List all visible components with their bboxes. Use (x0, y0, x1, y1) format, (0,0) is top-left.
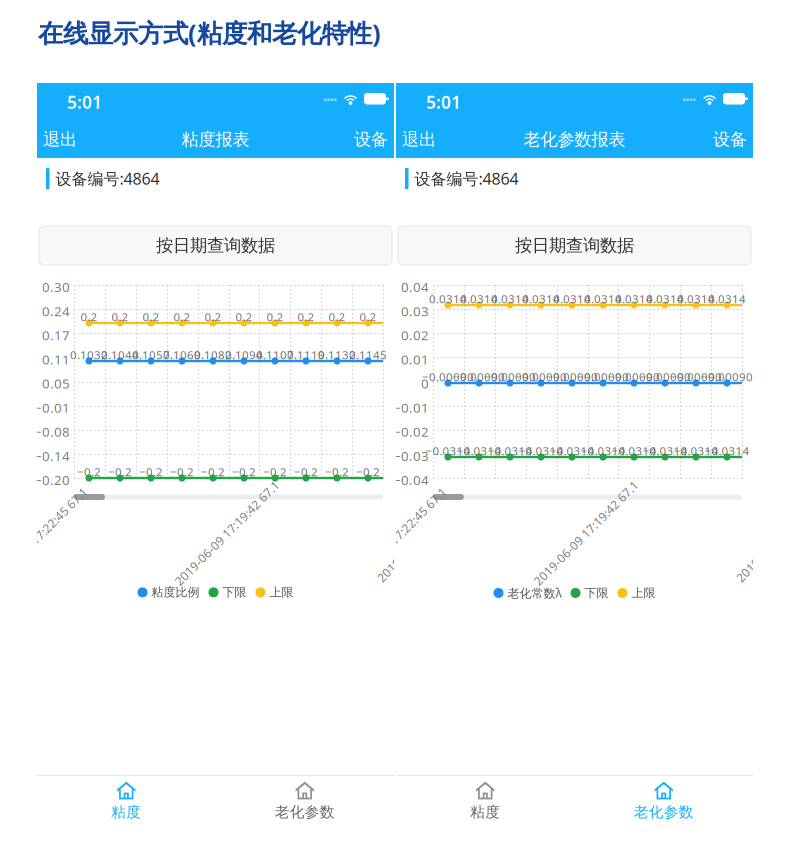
staticText: 0.0314 (522, 291, 560, 307)
staticText: 粘度 (470, 803, 500, 821)
staticText: 0.01 (401, 350, 429, 368)
staticText: 退出 (402, 129, 436, 150)
staticText: 0.1044 (101, 347, 139, 363)
staticText: 设备编号:4864 (414, 168, 518, 189)
staticText: −0.01 (34, 399, 70, 416)
staticText: −0.2 (294, 464, 318, 480)
staticText: −0.00090 (453, 369, 505, 385)
staticText: 5:01 (426, 90, 461, 113)
staticText: 0.0314 (491, 291, 529, 307)
staticText: −0.2 (170, 464, 194, 480)
staticText: −0.0314 (673, 443, 718, 459)
staticText: 0.1107 (256, 347, 294, 363)
staticText: −0.00090 (546, 369, 598, 385)
staticText: −0.01 (393, 399, 429, 416)
staticText: 老化参数 (634, 803, 694, 821)
staticText: −0.00090 (422, 369, 474, 385)
button[interactable]: 按日期查询数据 (39, 226, 392, 265)
staticText: 0.2 (235, 309, 252, 325)
staticText: 设备编号:4864 (55, 168, 159, 189)
staticText: 老化常数λ (507, 585, 561, 601)
staticText: 0.04 (401, 278, 429, 296)
staticText: −0.14 (34, 447, 70, 465)
staticText: −0.0314 (518, 443, 563, 459)
staticText: −0.2 (263, 464, 287, 480)
staticText: 老化参数 (275, 803, 335, 821)
staticText: 0.2 (80, 309, 97, 325)
staticText: 上限 (269, 585, 293, 600)
staticText: 0.0314 (677, 291, 715, 307)
staticText: −0.00090 (515, 369, 567, 385)
staticText: 0.1069 (163, 347, 201, 363)
staticText: 0.2 (173, 309, 190, 325)
staticText: 0.30 (42, 278, 70, 296)
staticText: 17:22:45 67.1 (21, 508, 96, 524)
staticText: 设备 (354, 129, 388, 150)
staticText: −0.0314 (549, 443, 594, 459)
staticText: −0.03 (393, 447, 429, 465)
staticText: −0.00090 (670, 369, 722, 385)
staticText: 0.1119 (287, 347, 325, 363)
staticText: 粘度 (111, 803, 141, 821)
staticText: −0.04 (393, 471, 429, 489)
button[interactable]: 老化参数 (215, 776, 394, 826)
staticText: 在线显示方式(粘度和老化特性) (38, 16, 381, 50)
staticText: −0.2 (356, 464, 380, 480)
staticText: 0.2 (297, 309, 314, 325)
staticText: −0.00090 (608, 369, 660, 385)
staticText: 0.2 (359, 309, 376, 325)
staticText: 粘度报表 (181, 129, 249, 150)
staticText: −0.00090 (701, 369, 753, 385)
staticText: 0.0314 (646, 291, 684, 307)
staticText: 2019-06-09 17:19:42 67.1 (156, 525, 298, 541)
staticText: 0.1057 (132, 347, 170, 363)
staticText: 0.0314 (615, 291, 653, 307)
staticText: 老化参数报表 (523, 129, 625, 150)
staticText: 0.1132 (318, 347, 356, 363)
staticText: −0.0314 (456, 443, 501, 459)
staticText: −0.00090 (577, 369, 629, 385)
staticText: 0.2 (142, 309, 159, 325)
staticText: −0.0314 (611, 443, 656, 459)
staticText: −0.2 (201, 464, 225, 480)
button[interactable]: 退出 (402, 118, 436, 161)
staticText: −0.20 (34, 471, 70, 489)
staticText: −0.02 (393, 423, 429, 440)
staticText: 0.03 (401, 302, 429, 320)
staticText: 0.0314 (460, 291, 498, 307)
staticText: 0.0314 (553, 291, 591, 307)
staticText: −0.2 (139, 464, 163, 480)
staticText: 下限 (222, 585, 246, 600)
staticText: 设备 (713, 129, 747, 150)
staticText: −0.0314 (642, 443, 687, 459)
staticText: −0.2 (325, 464, 349, 480)
staticText: −0.08 (34, 423, 70, 440)
staticText: 按日期查询数据 (515, 235, 634, 256)
staticText: 下限 (584, 586, 608, 600)
staticText: 0.11 (42, 350, 70, 368)
staticText: 0.2 (111, 309, 128, 325)
staticText: 0.0314 (429, 291, 467, 307)
button[interactable]: 设备 (713, 118, 747, 161)
staticText: −0.00090 (484, 369, 536, 385)
button[interactable]: 老化参数 (574, 776, 753, 826)
staticText: 5:01 (67, 90, 102, 113)
staticText: 17:22:45 67.1 (380, 508, 455, 524)
staticText: 0.1094 (225, 347, 263, 363)
staticText: 0.2 (266, 309, 283, 325)
staticText: −0.0314 (704, 443, 749, 459)
button[interactable]: 粘度 (396, 776, 574, 826)
staticText: 2019 (375, 562, 403, 578)
staticText: 2019-06-09 17:19:42 67.1 (515, 525, 657, 541)
button[interactable]: 按日期查询数据 (398, 226, 751, 265)
staticText: 粘度比例 (151, 585, 199, 600)
button[interactable]: 退出 (43, 118, 77, 161)
staticText: 0.1032 (70, 347, 108, 363)
staticText: −0.0314 (425, 443, 470, 459)
staticText: −0.2 (108, 464, 132, 480)
staticText: −0.00090 (639, 369, 691, 385)
staticText: 0.0314 (708, 291, 746, 307)
staticText: 0.05 (42, 374, 70, 392)
button[interactable]: 粘度 (37, 776, 215, 826)
button[interactable]: 设备 (354, 118, 388, 161)
